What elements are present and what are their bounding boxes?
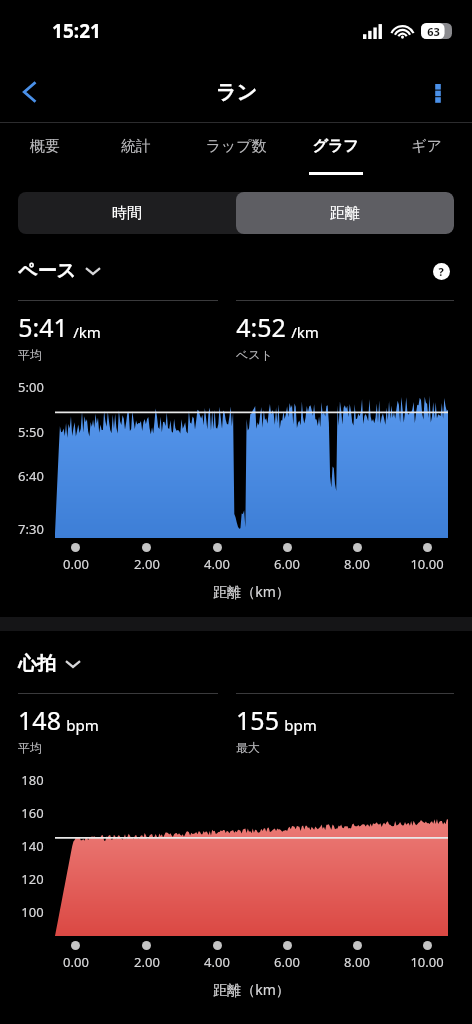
button[interactable]: Help [428, 258, 454, 284]
staticText: 63 [427, 24, 440, 39]
staticText: 距離 [330, 204, 360, 223]
staticText: 2.00 [134, 555, 160, 573]
staticText: 距離（km） [213, 980, 290, 999]
staticText: 6.00 [274, 953, 300, 971]
staticText: 0.00 [63, 555, 89, 573]
button[interactable]: Back [6, 68, 54, 116]
staticText: 概要 [30, 137, 60, 156]
staticText: 統計 [121, 137, 151, 156]
staticText: 距離（km） [213, 582, 290, 601]
staticText: 120 [21, 870, 44, 888]
staticText: 4.00 [204, 953, 230, 971]
staticText: /km [73, 322, 101, 342]
staticText: 平均 [18, 740, 42, 755]
staticText: ラップ数 [205, 137, 267, 156]
staticText: bpm [66, 715, 99, 735]
staticText: 4:52 [236, 310, 286, 344]
staticText: 最大 [236, 740, 260, 755]
staticText: 8.00 [344, 953, 370, 971]
button[interactable]: 心拍 [18, 652, 81, 676]
button[interactable]: 時間 [18, 192, 236, 234]
staticText: 180 [21, 771, 44, 789]
staticText: 5:50 [18, 423, 44, 441]
button[interactable]: 距離 [236, 192, 454, 234]
staticText: 5:00 [18, 378, 44, 396]
staticText: 平均 [18, 347, 42, 362]
staticText: 160 [21, 804, 44, 822]
staticText: 2.00 [134, 953, 160, 971]
staticText: ? [438, 264, 444, 279]
button[interactable]: More options [416, 70, 460, 114]
staticText: bpm [284, 715, 317, 735]
staticText: 8.00 [344, 555, 370, 573]
staticText: 時間 [112, 204, 142, 223]
button[interactable]: 統計 [90, 122, 181, 179]
staticText: グラフ [312, 137, 359, 156]
staticText: 6:40 [18, 467, 44, 485]
staticText: ラン [216, 80, 257, 105]
staticText: /km [291, 322, 319, 342]
staticText: 5:41 [18, 310, 68, 344]
button[interactable]: ペース [18, 259, 101, 283]
staticText: 10.00 [410, 953, 444, 971]
button[interactable]: 概要 [0, 122, 90, 179]
staticText: 4.00 [204, 555, 230, 573]
staticText: 15:21 [52, 18, 101, 44]
button[interactable]: ギア [381, 122, 472, 179]
button[interactable]: ラップ数 [181, 122, 290, 179]
staticText: 10.00 [410, 555, 444, 573]
staticText: 155 [236, 703, 279, 737]
staticText: 148 [18, 703, 61, 737]
staticText: 0.00 [63, 953, 89, 971]
staticText: ギア [411, 137, 442, 156]
staticText: ベスト [236, 347, 273, 362]
staticText: ペース [18, 259, 76, 283]
button[interactable]: グラフ [290, 122, 381, 179]
staticText: 100 [21, 903, 44, 921]
staticText: 心拍 [18, 652, 56, 676]
staticText: 140 [21, 837, 44, 855]
staticText: 6.00 [274, 555, 300, 573]
staticText: 7:30 [18, 520, 44, 538]
